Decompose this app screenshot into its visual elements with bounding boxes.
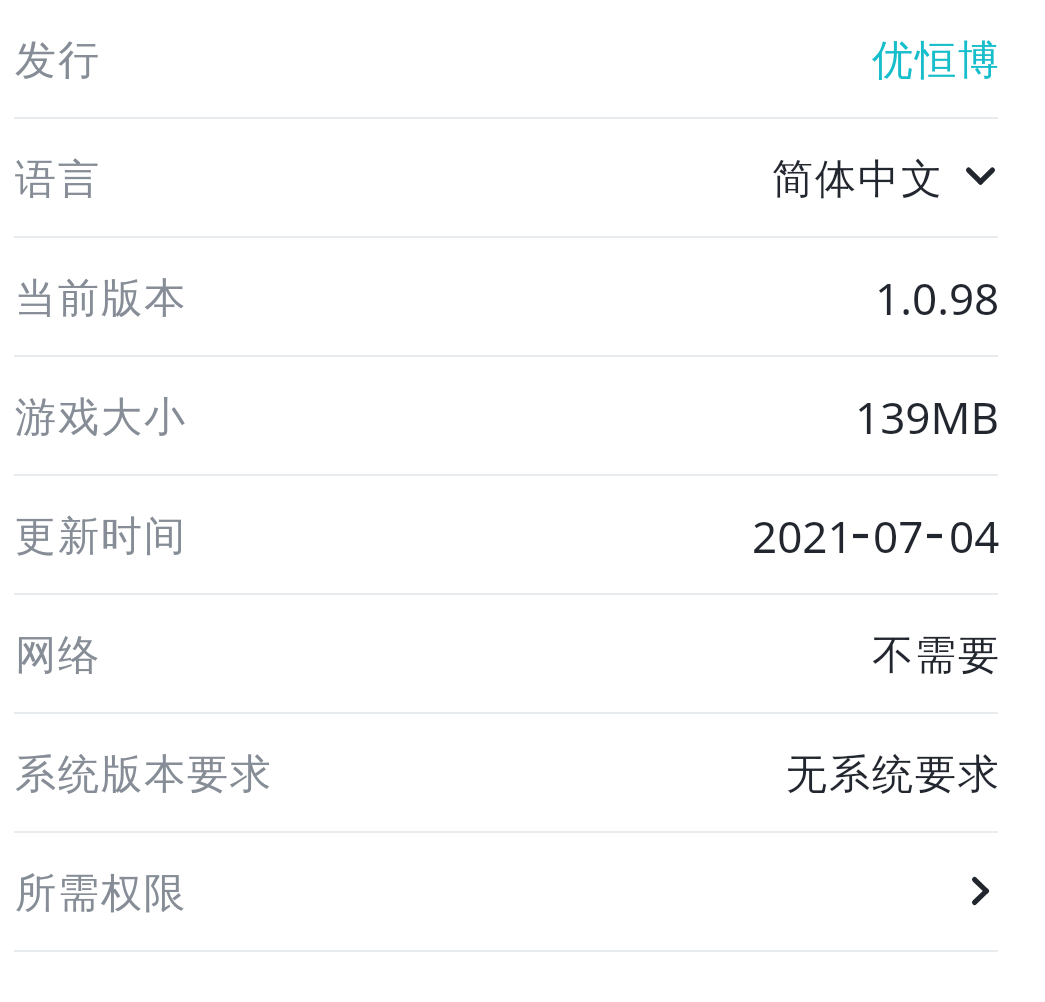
- staticText: 不需要: [871, 630, 1000, 682]
- staticText: 发行: [14, 35, 100, 87]
- staticText: 更新时间: [14, 511, 186, 563]
- button[interactable]: Required permissions: [972, 877, 989, 905]
- button[interactable]: 语言: [0, 119, 1045, 238]
- staticText: 系统版本要求: [14, 749, 272, 801]
- staticText: 优恒博: [871, 35, 1000, 87]
- staticText: 语言: [14, 154, 100, 206]
- staticText: 网络: [14, 630, 100, 682]
- button[interactable]: 网络: [0, 595, 1045, 714]
- button[interactable]: 所需权限: [0, 833, 1045, 952]
- staticText: 所需权限: [14, 868, 186, 920]
- staticText: 当前版本: [14, 273, 186, 325]
- button[interactable]: Change language: [966, 156, 995, 196]
- button[interactable]: 当前版本: [0, 238, 1045, 357]
- staticText: 游戏大小: [14, 392, 186, 444]
- button[interactable]: 发行: [0, 0, 1045, 119]
- button[interactable]: 游戏大小: [0, 357, 1045, 476]
- staticText: 2021: [752, 506, 853, 566]
- staticText: 简体中文: [771, 154, 943, 206]
- staticText: 139MB: [855, 387, 1000, 447]
- button[interactable]: 系统版本要求: [0, 714, 1045, 833]
- staticText: 1.0.98: [875, 268, 1000, 328]
- button[interactable]: 更新时间: [0, 476, 1045, 595]
- staticText: 无系统要求: [785, 749, 1000, 801]
- staticText: 07: [873, 506, 924, 566]
- staticText: 04: [949, 506, 1000, 566]
